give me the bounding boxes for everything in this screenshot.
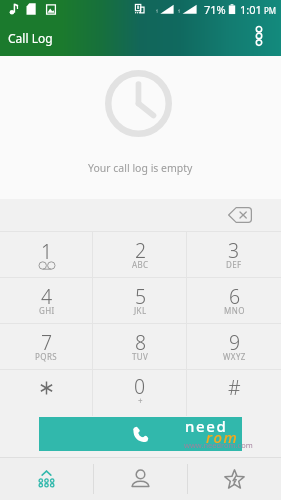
staticText: Call Log bbox=[8, 30, 53, 46]
button[interactable]: 3 bbox=[187, 232, 281, 277]
staticText: GHI bbox=[39, 305, 55, 316]
staticText: 9 bbox=[229, 329, 241, 356]
staticText: 6 bbox=[229, 283, 241, 310]
button[interactable]: More options bbox=[245, 22, 273, 50]
staticText: WXYZ bbox=[223, 351, 246, 362]
staticText: + bbox=[138, 395, 143, 406]
staticText: 2 bbox=[135, 237, 147, 264]
button[interactable]: Speed dial bbox=[188, 458, 281, 500]
staticText: ABC bbox=[132, 259, 149, 270]
button[interactable]: Backspace bbox=[223, 199, 257, 231]
button[interactable]: 6 bbox=[187, 278, 281, 323]
button[interactable]: 5 bbox=[93, 278, 187, 323]
staticText: TUV bbox=[132, 351, 149, 362]
button[interactable]: 2 bbox=[93, 232, 187, 277]
staticText: 7 bbox=[41, 329, 53, 356]
staticText: 71% bbox=[204, 2, 226, 17]
staticText: www.needrom.com bbox=[184, 440, 253, 450]
staticText: PM bbox=[264, 5, 277, 16]
button[interactable] bbox=[0, 370, 93, 416]
staticText: need bbox=[185, 416, 228, 436]
staticText: 5 bbox=[135, 283, 147, 310]
button[interactable]: 4 bbox=[0, 278, 93, 323]
staticText: PQRS bbox=[35, 351, 58, 362]
staticText: rom bbox=[206, 427, 239, 447]
staticText: 4 bbox=[41, 283, 53, 310]
staticText: 1 bbox=[41, 238, 53, 265]
staticText: 1:01 bbox=[240, 2, 262, 17]
button[interactable]: # bbox=[187, 370, 281, 416]
button[interactable]: 1 bbox=[0, 232, 93, 277]
button[interactable]: 7 bbox=[0, 324, 93, 369]
button[interactable]: Call bbox=[39, 417, 242, 451]
button[interactable]: Contacts bbox=[94, 458, 187, 500]
staticText: DEF bbox=[226, 259, 242, 270]
button[interactable]: 8 bbox=[93, 324, 187, 369]
staticText: JKL bbox=[134, 305, 147, 316]
staticText: Your call log is empty bbox=[88, 161, 193, 175]
staticText: 3 bbox=[228, 237, 240, 264]
button[interactable]: Dialpad bbox=[0, 458, 93, 500]
staticText: # bbox=[228, 374, 241, 401]
staticText: 0 bbox=[134, 373, 146, 400]
staticText: MNO bbox=[224, 305, 245, 316]
button[interactable]: 9 bbox=[187, 324, 281, 369]
staticText: 8 bbox=[135, 329, 147, 356]
button[interactable]: 0 bbox=[93, 370, 187, 416]
